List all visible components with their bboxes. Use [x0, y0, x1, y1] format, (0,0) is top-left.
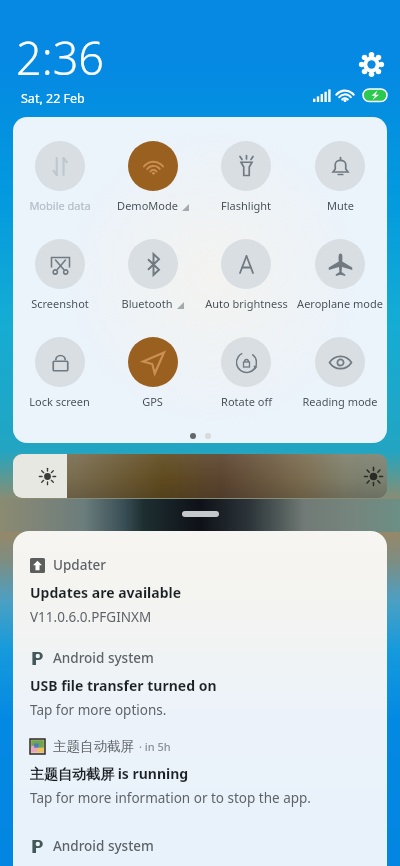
staticText: 主题自动截屏 is running [30, 764, 189, 783]
staticText: USB file transfer turned on [30, 676, 217, 695]
staticText: 2:36 [16, 27, 105, 88]
staticText: Sat, 22 Feb [21, 90, 85, 107]
button[interactable]: Settings [355, 48, 387, 80]
staticText: Mute [327, 198, 354, 213]
staticText: Tap for more information or to stop the … [30, 789, 311, 807]
staticText: Flashlight [221, 198, 271, 213]
staticText: Auto brightness [205, 296, 288, 311]
button[interactable]: GPS [106, 337, 199, 409]
button[interactable]: Android system [13, 835, 387, 861]
staticText: Lock screen [29, 394, 90, 409]
button[interactable]: Android system [13, 647, 387, 725]
button[interactable]: Auto brightness [199, 239, 293, 311]
button[interactable]: Mobile data [13, 141, 106, 213]
staticText: DemoMode [117, 198, 178, 213]
staticText: GPS [142, 394, 163, 409]
staticText: Tap for more options. [30, 701, 167, 719]
staticText: Updater [53, 556, 107, 574]
button[interactable]: Screenshot [13, 239, 106, 311]
button[interactable]: Updater [13, 554, 387, 632]
button[interactable]: 主题自动截屏 [13, 736, 387, 813]
staticText: Rotate off [221, 394, 272, 409]
button[interactable]: Drag handle [182, 511, 219, 517]
staticText: V11.0.6.0.PFGINXM [30, 608, 152, 626]
button[interactable]: Flashlight [199, 141, 293, 213]
button[interactable]: Rotate off [199, 337, 293, 409]
staticText: Screenshot [31, 296, 89, 311]
button[interactable]: Bluetooth [106, 239, 199, 311]
staticText: Bluetooth [121, 296, 173, 311]
button[interactable]: Brightness [13, 454, 387, 498]
staticText: Android system [53, 649, 154, 667]
button[interactable]: Lock screen [13, 337, 106, 409]
staticText: Reading mode [302, 394, 378, 409]
staticText: Updates are available [30, 583, 182, 602]
staticText: Aeroplane mode [297, 296, 383, 311]
staticText: · in 5h [139, 739, 171, 754]
staticText: Android system [53, 837, 154, 855]
button[interactable]: DemoMode [106, 141, 199, 213]
button[interactable]: Reading mode [293, 337, 387, 409]
button[interactable]: Mute [293, 141, 387, 213]
staticText: Mobile data [29, 198, 91, 213]
button[interactable]: Aeroplane mode [293, 239, 387, 311]
staticText: 主题自动截屏 [53, 738, 134, 755]
